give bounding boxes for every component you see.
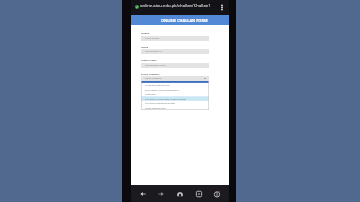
staticText: Mobile: [141, 31, 150, 34]
staticText: Select Category: [145, 77, 162, 80]
button[interactable]: EXAM FEE/RE-APPEAR/IMPROVEMENT: [141, 88, 209, 92]
staticText: CHANGE OF PROGRAM/COURSES: [145, 102, 176, 105]
button[interactable]: Select Category: [141, 76, 209, 81]
button[interactable]: ADMISSION/REGISTRATION: [141, 83, 209, 87]
staticText: Select Category: [141, 72, 160, 75]
staticText: online.aiou.edu.pk/challan/Challan1: [140, 3, 211, 9]
staticText: Muhammad Aslam: [145, 64, 166, 67]
staticText: ONLINE CHALLAN FORM: [161, 18, 208, 23]
button[interactable]: More options: [217, 0, 226, 15]
staticText: MIGRATION: [145, 93, 156, 96]
staticText: 03001234567: [145, 37, 160, 40]
button[interactable]: CHANGE OF NAME/FATHER NAME/CAST/DOB: [141, 97, 209, 101]
staticText: OTHER SERVICES/MISC: [145, 107, 166, 110]
button[interactable]: Muhammad Ali: [141, 49, 209, 54]
button[interactable]: 03001234567: [141, 36, 209, 41]
button[interactable]: Tabs: [210, 186, 224, 202]
button[interactable]: CHANGE OF PROGRAM/COURSES: [141, 101, 209, 105]
staticText: CHANGE OF NAME/FATHER NAME/CAST/DOB: [145, 98, 186, 101]
button[interactable]: Home: [173, 186, 187, 202]
staticText: ADMISSION/REGISTRATION: [145, 84, 171, 87]
button[interactable]: Back: [136, 186, 150, 202]
button[interactable]: MIGRATION: [141, 92, 209, 96]
staticText: Father Name: [141, 58, 157, 61]
staticText: Muhammad Ali: [145, 50, 162, 53]
staticText: EXAM FEE/RE-APPEAR/IMPROVEMENT: [145, 89, 180, 92]
button[interactable]: Muhammad Aslam: [141, 63, 209, 68]
button[interactable]: Recent apps: [192, 186, 206, 202]
staticText: Name: [141, 45, 149, 48]
button[interactable]: OTHER SERVICES/MISC: [141, 106, 209, 110]
button[interactable]: Forward: [154, 186, 168, 202]
